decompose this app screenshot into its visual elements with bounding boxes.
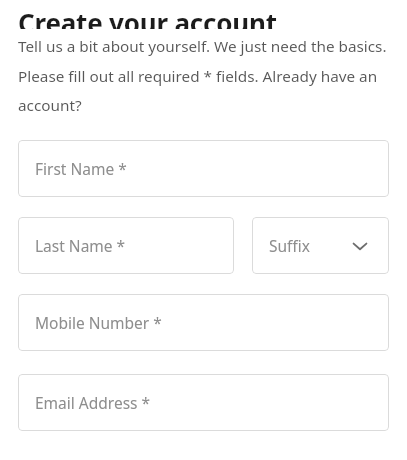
button[interactable]: Email Address *: [18, 374, 389, 431]
button[interactable]: Last Name *: [18, 217, 234, 274]
staticText: Tell us a bit about yourself. We just ne…: [18, 36, 393, 115]
button[interactable]: First Name *: [18, 140, 389, 197]
staticText: Email Address *: [35, 392, 151, 413]
other: Open suffix options: [352, 238, 368, 254]
staticText: Mobile Number *: [35, 312, 162, 333]
button[interactable]: Mobile Number *: [18, 294, 389, 351]
staticText: Last Name *: [35, 235, 126, 256]
button[interactable]: Suffix: [252, 217, 389, 274]
staticText: First Name *: [35, 158, 127, 179]
staticText: Suffix: [269, 235, 310, 256]
staticText: Create your account: [18, 5, 277, 29]
